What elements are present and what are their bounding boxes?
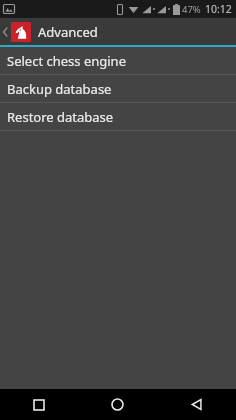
staticText: Select chess engine [7, 52, 126, 70]
button[interactable]: Back [157, 389, 236, 420]
button[interactable]: Select chess engine [0, 47, 236, 74]
button[interactable]: Navigate up: Advanced [0, 18, 236, 45]
button[interactable]: Home [78, 389, 157, 420]
staticText: Restore database [7, 108, 114, 126]
button[interactable]: Backup database [0, 75, 236, 102]
button[interactable]: Recent apps [0, 389, 78, 420]
staticText: Advanced [38, 23, 98, 41]
button[interactable]: Restore database [0, 103, 236, 130]
staticText: 10:12 [205, 2, 232, 16]
staticText: 47% [182, 3, 201, 16]
staticText: Backup database [7, 80, 112, 98]
